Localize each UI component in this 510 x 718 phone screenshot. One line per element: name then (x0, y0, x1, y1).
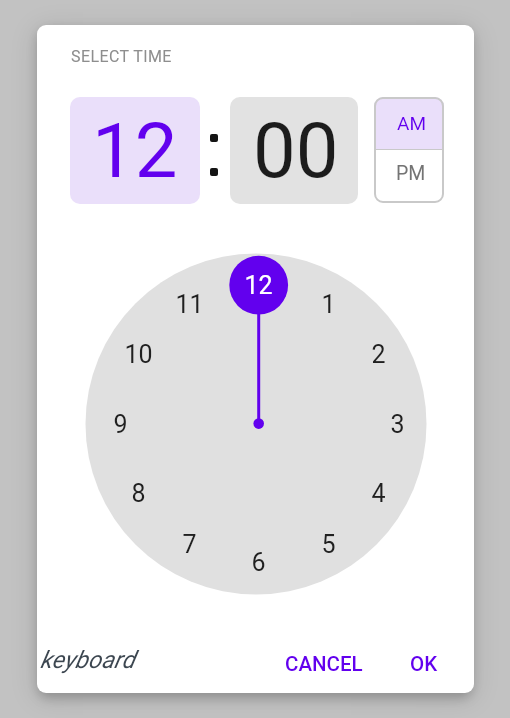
button[interactable]: 00 (230, 97, 358, 204)
staticText: 6 (251, 548, 266, 577)
staticText: 10 (124, 340, 153, 369)
button[interactable]: PM (374, 150, 444, 203)
button[interactable]: CANCEL (269, 642, 379, 686)
button[interactable]: 12 (70, 97, 200, 204)
staticText: SELECT TIME (71, 47, 172, 66)
staticText: CANCEL (285, 652, 363, 676)
button[interactable]: OK (389, 642, 459, 686)
staticText: 12 (92, 106, 178, 195)
staticText: 1 (321, 290, 336, 319)
staticText: PM (396, 162, 426, 185)
staticText: 00 (253, 106, 339, 195)
button[interactable]: AM (374, 97, 444, 150)
staticText: AM (397, 112, 426, 134)
staticText: 12 (244, 271, 273, 300)
staticText: 7 (182, 530, 197, 559)
staticText: keyboard (40, 646, 135, 674)
staticText: 8 (131, 479, 146, 508)
staticText: 9 (113, 410, 128, 439)
staticText: 2 (371, 340, 386, 369)
staticText: 5 (321, 530, 336, 559)
staticText: OK (410, 652, 438, 676)
staticText: 4 (371, 479, 386, 508)
staticText: 11 (175, 290, 204, 319)
button[interactable]: keyboard (32, 640, 142, 680)
staticText: 3 (390, 410, 405, 439)
